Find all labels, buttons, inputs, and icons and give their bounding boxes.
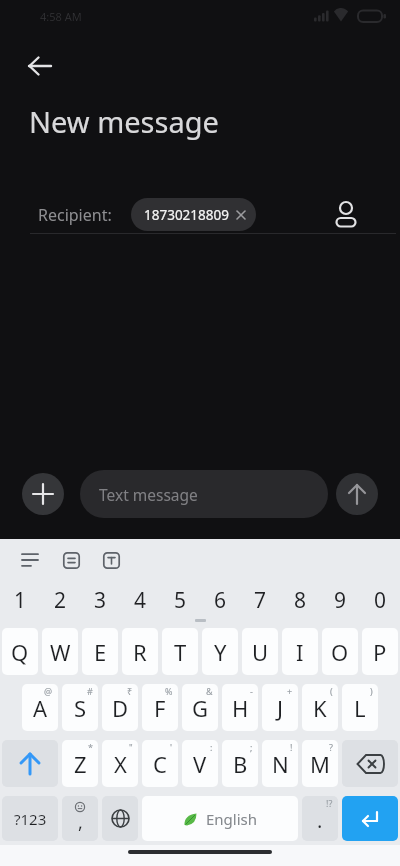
button[interactable]: 18730218809: [131, 198, 256, 231]
button[interactable]: T: [162, 628, 198, 675]
button[interactable]: 4: [120, 584, 160, 616]
button[interactable]: Z: [62, 740, 98, 787]
button[interactable]: C: [142, 740, 178, 787]
staticText: 9: [334, 586, 347, 615]
staticText: 18730218809: [144, 206, 229, 224]
button[interactable]: W: [42, 628, 78, 675]
button[interactable]: English: [142, 796, 298, 841]
staticText: %: [165, 685, 173, 697]
button[interactable]: [336, 473, 378, 515]
button[interactable]: R: [122, 628, 158, 675]
staticText: W: [50, 637, 71, 667]
staticText: L: [354, 693, 366, 723]
button[interactable]: 1: [0, 584, 40, 616]
button[interactable]: [102, 796, 138, 841]
staticText: Recipient:: [38, 204, 112, 226]
staticText: R: [133, 637, 147, 667]
staticText: :: [210, 741, 213, 753]
staticText: 4:58 AM: [40, 9, 82, 24]
staticText: J: [277, 693, 284, 723]
button[interactable]: 2: [40, 584, 80, 616]
button[interactable]: A: [22, 684, 58, 731]
button[interactable]: Q: [2, 628, 38, 675]
staticText: 2: [54, 586, 67, 615]
button[interactable]: X: [102, 740, 138, 787]
button[interactable]: [326, 194, 366, 234]
button[interactable]: 0: [360, 584, 400, 616]
staticText: 8: [294, 586, 307, 615]
staticText: 3: [94, 586, 107, 615]
button[interactable]: G: [182, 684, 218, 731]
button[interactable]: [2, 740, 58, 787]
staticText: B: [233, 749, 248, 779]
staticText: #: [87, 685, 93, 697]
staticText: S: [74, 693, 87, 723]
button[interactable]: B: [222, 740, 258, 787]
staticText: F: [154, 693, 166, 723]
button[interactable]: U: [242, 628, 278, 675]
staticText: !: [290, 741, 293, 753]
button[interactable]: L: [342, 684, 378, 731]
staticText: &: [206, 685, 213, 697]
staticText: ": [129, 741, 133, 753]
button[interactable]: ,: [62, 796, 98, 841]
staticText: Q: [11, 637, 29, 667]
button[interactable]: [342, 740, 398, 787]
button[interactable]: [12, 545, 48, 575]
button[interactable]: !?: [302, 796, 338, 841]
button[interactable]: S: [62, 684, 98, 731]
staticText: ?123: [14, 809, 47, 829]
staticText: T: [174, 637, 187, 667]
button[interactable]: [342, 796, 398, 841]
button[interactable]: V: [182, 740, 218, 787]
button[interactable]: 7: [240, 584, 280, 616]
button[interactable]: 5: [160, 584, 200, 616]
staticText: New message: [29, 102, 219, 141]
staticText: 7: [254, 586, 267, 615]
button[interactable]: D: [102, 684, 138, 731]
staticText: 0: [374, 586, 387, 615]
button[interactable]: J: [262, 684, 298, 731]
staticText: G: [192, 693, 209, 723]
staticText: ,: [78, 810, 83, 835]
staticText: E: [94, 637, 107, 667]
button[interactable]: E: [82, 628, 118, 675]
button[interactable]: P: [362, 628, 398, 675]
staticText: @: [44, 685, 53, 697]
button[interactable]: H: [222, 684, 258, 731]
button[interactable]: [18, 46, 62, 86]
staticText: +: [287, 685, 293, 697]
staticText: A: [33, 693, 48, 723]
button[interactable]: Text message: [80, 470, 328, 518]
staticText: P: [373, 637, 387, 667]
staticText: ?: [329, 741, 333, 753]
staticText: I: [296, 637, 304, 667]
button[interactable]: 8: [280, 584, 320, 616]
button[interactable]: 6: [200, 584, 240, 616]
staticText: *: [88, 741, 93, 753]
button[interactable]: 3: [80, 584, 120, 616]
button[interactable]: Y: [202, 628, 238, 675]
staticText: (: [330, 685, 333, 697]
staticText: 1: [14, 586, 27, 615]
button[interactable]: F: [142, 684, 178, 731]
button[interactable]: 9: [320, 584, 360, 616]
staticText: Y: [214, 637, 227, 667]
button[interactable]: O: [322, 628, 358, 675]
button[interactable]: [53, 545, 89, 575]
staticText: N: [272, 749, 289, 779]
staticText: 4: [134, 586, 147, 615]
staticText: 5: [174, 586, 187, 615]
button[interactable]: ?123: [2, 796, 58, 841]
staticText: 6: [214, 586, 227, 615]
staticText: X: [114, 749, 127, 779]
button[interactable]: M: [302, 740, 338, 787]
button[interactable]: I: [282, 628, 318, 675]
button[interactable]: [22, 473, 64, 515]
staticText: D: [112, 693, 129, 723]
button[interactable]: K: [302, 684, 338, 731]
staticText: C: [153, 749, 167, 779]
staticText: ): [370, 685, 373, 697]
button[interactable]: [93, 545, 129, 575]
button[interactable]: N: [262, 740, 298, 787]
